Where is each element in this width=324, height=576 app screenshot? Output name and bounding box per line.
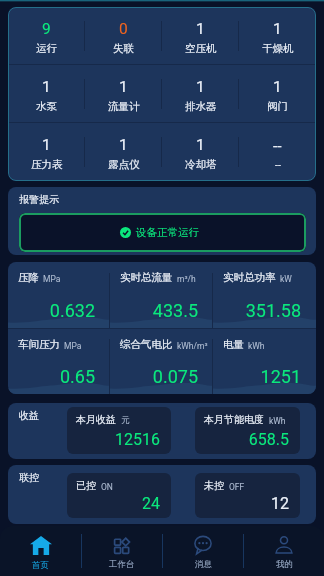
staticText: 1 (119, 136, 128, 154)
button[interactable]: 0 (85, 7, 162, 64)
staticText: 1 (42, 136, 51, 154)
staticText: -- (273, 137, 282, 155)
button[interactable]: 我的 (244, 526, 324, 576)
button[interactable]: 压降 (8, 262, 110, 328)
staticText: 车间压力 (18, 338, 60, 351)
staticText: 351.58 (223, 300, 301, 321)
staticText: 失联 (113, 42, 134, 55)
button[interactable]: 综合气电比 (110, 329, 213, 394)
staticText: 24 (76, 494, 160, 513)
staticText: 排水器 (185, 100, 217, 113)
other: 工作台 (113, 536, 131, 554)
staticText: 阀门 (267, 100, 288, 113)
staticText: 工作台 (109, 559, 135, 570)
button[interactable]: 1 (8, 65, 85, 122)
staticText: 空压机 (185, 42, 217, 55)
button[interactable]: 1 (162, 123, 239, 180)
staticText: 消息 (195, 559, 212, 570)
button[interactable]: 1 (239, 7, 316, 64)
staticText: 我的 (276, 559, 293, 570)
staticText: 冷却塔 (185, 158, 217, 171)
staticText: -- (275, 159, 281, 171)
button[interactable]: 未控 (195, 473, 300, 518)
button[interactable]: 工作台 (82, 526, 162, 576)
staticText: 未控 (204, 479, 224, 492)
staticText: kW (280, 274, 292, 284)
other: 消息 (194, 536, 212, 554)
staticText: kWh/m³ (177, 341, 208, 351)
staticText: 露点仪 (108, 158, 140, 171)
button[interactable]: 1 (85, 123, 162, 180)
staticText: 1 (273, 78, 282, 96)
button[interactable]: 已控 (67, 473, 171, 518)
staticText: 9 (42, 20, 51, 38)
staticText: 设备正常运行 (136, 226, 199, 239)
staticText: 本月节能电度 (204, 413, 264, 426)
button[interactable]: 电量 (213, 329, 316, 394)
staticText: MPa (64, 341, 82, 351)
staticText: 1 (196, 20, 205, 38)
staticText: kWh (248, 341, 265, 351)
staticText: 实时总功率 (223, 271, 276, 284)
staticText: m³/h (177, 274, 196, 284)
button[interactable]: 1 (162, 65, 239, 122)
button[interactable]: 1 (8, 123, 85, 180)
staticText: 1 (196, 78, 205, 96)
button[interactable]: 本月节能电度 (195, 407, 300, 454)
staticText: 流量计 (108, 100, 140, 113)
other: 首页 (30, 536, 52, 555)
staticText: 综合气电比 (120, 338, 173, 351)
button[interactable]: 实时总功率 (213, 262, 316, 328)
staticText: 电量 (223, 338, 244, 351)
staticText: 元 (121, 415, 130, 426)
staticText: 433.5 (120, 300, 198, 321)
staticText: 1 (42, 78, 51, 96)
staticText: OFF (229, 482, 245, 492)
staticText: 压降 (18, 271, 39, 284)
button[interactable]: -- (239, 123, 316, 180)
staticText: 干燥机 (262, 42, 294, 55)
staticText: 658.5 (204, 430, 289, 449)
staticText: 0.632 (18, 300, 95, 321)
staticText: 0 (119, 20, 128, 38)
button[interactable]: 消息 (163, 526, 243, 576)
staticText: 首页 (32, 560, 49, 571)
staticText: 本月收益 (76, 413, 116, 426)
staticText: 联控 (19, 471, 39, 484)
staticText: 报警提示 (19, 193, 59, 206)
staticText: 0.65 (18, 366, 95, 387)
staticText: 12516 (76, 430, 160, 449)
button[interactable]: 设备正常运行 (19, 213, 306, 252)
staticText: 水泵 (36, 100, 57, 113)
button[interactable]: 1 (239, 65, 316, 122)
button[interactable]: 车间压力 (8, 329, 110, 394)
button[interactable]: 首页 (0, 526, 81, 576)
staticText: 收益 (19, 409, 39, 422)
button[interactable]: 9 (8, 7, 85, 64)
staticText: 压力表 (31, 158, 63, 171)
staticText: kWh (269, 416, 286, 426)
staticText: 运行 (36, 42, 57, 55)
staticText: 1 (196, 136, 205, 154)
button[interactable]: 1 (162, 7, 239, 64)
button[interactable]: 本月收益 (67, 407, 171, 454)
staticText: MPa (43, 274, 61, 284)
staticText: 实时总流量 (120, 271, 173, 284)
staticText: ON (101, 482, 113, 492)
other: 我的 (275, 536, 293, 554)
button[interactable]: 实时总流量 (110, 262, 213, 328)
staticText: 1 (119, 78, 128, 96)
staticText: 0.075 (120, 366, 198, 387)
staticText: 12 (204, 494, 289, 513)
staticText: 1 (273, 20, 282, 38)
staticText: 1251 (223, 366, 301, 387)
staticText: 已控 (76, 479, 96, 492)
button[interactable]: 1 (85, 65, 162, 122)
